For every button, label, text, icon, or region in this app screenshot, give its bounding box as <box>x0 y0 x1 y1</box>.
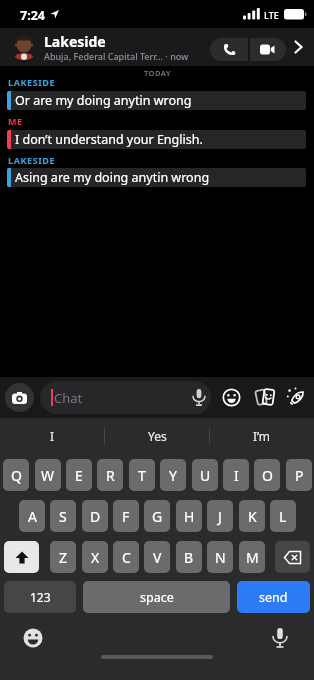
staticText: I <box>234 466 239 485</box>
button[interactable] <box>275 541 310 573</box>
staticText: N <box>215 548 226 567</box>
button[interactable]: Z <box>50 541 76 573</box>
button[interactable]: W <box>35 459 61 491</box>
staticText: V <box>153 548 162 567</box>
button[interactable]: I <box>223 459 249 491</box>
staticText: Or are my doing anytin wrong <box>15 92 192 109</box>
button[interactable] <box>5 383 34 412</box>
button[interactable]: H <box>176 500 202 532</box>
button[interactable]: P <box>286 459 312 491</box>
button[interactable] <box>210 38 248 61</box>
button[interactable]: X <box>82 541 108 573</box>
button[interactable]: U <box>192 459 218 491</box>
staticText: Z <box>59 548 68 567</box>
button[interactable]: Or are my doing anytin wrong <box>7 91 306 110</box>
button[interactable] <box>248 38 286 61</box>
button[interactable]: T <box>129 459 155 491</box>
staticText: F <box>122 507 130 526</box>
staticText: G <box>152 507 163 526</box>
button[interactable] <box>4 541 39 573</box>
button[interactable]: S <box>50 500 76 532</box>
staticText: Chat <box>54 389 83 407</box>
button[interactable]: R <box>97 459 123 491</box>
staticText: LAKESIDE <box>8 76 56 88</box>
staticText: Asing are my doing anytin wrong <box>15 169 210 186</box>
staticText: send <box>259 589 288 606</box>
staticText: H <box>184 507 195 526</box>
button[interactable]: E <box>66 459 92 491</box>
staticText: Yes <box>148 428 167 444</box>
staticText: U <box>200 466 211 485</box>
button[interactable]: F <box>113 500 139 532</box>
button[interactable]: K <box>239 500 265 532</box>
staticText: R <box>106 466 115 485</box>
staticText: O <box>262 466 273 485</box>
button[interactable]: B <box>176 541 202 573</box>
staticText: Y <box>169 466 177 485</box>
staticText: LAKESIDE <box>8 154 56 166</box>
staticText: Abuja, Federal Capital Terr… · now <box>44 50 189 62</box>
button[interactable]: 123 <box>4 581 76 613</box>
button[interactable]: D <box>82 500 108 532</box>
button[interactable] <box>283 384 310 411</box>
staticText: ME <box>8 115 23 127</box>
staticText: W <box>41 466 55 485</box>
staticText: J <box>218 507 222 526</box>
staticText: B <box>184 548 194 567</box>
button[interactable] <box>219 385 244 410</box>
button[interactable]: N <box>207 541 233 573</box>
staticText: C <box>122 548 131 567</box>
button[interactable] <box>288 35 308 59</box>
staticText: E <box>75 466 83 485</box>
button[interactable] <box>18 623 48 653</box>
button[interactable]: Yes <box>105 418 209 454</box>
staticText: A <box>28 507 37 526</box>
button[interactable] <box>265 623 295 653</box>
staticText: Lakeside <box>44 32 106 51</box>
staticText: TODAY <box>144 68 171 78</box>
button[interactable]: M <box>239 541 265 573</box>
staticText: M <box>246 548 259 567</box>
staticText: space <box>140 589 174 606</box>
button[interactable]: Y <box>160 459 186 491</box>
button[interactable]: Q <box>3 459 29 491</box>
button[interactable]: J <box>207 500 233 532</box>
button[interactable]: I’m <box>209 418 314 454</box>
button[interactable]: Chat <box>40 381 211 414</box>
button[interactable]: send <box>237 581 310 613</box>
button[interactable]: Asing are my doing anytin wrong <box>7 168 306 187</box>
button[interactable]: O <box>254 459 280 491</box>
staticText: 7:24 <box>20 7 45 24</box>
button[interactable]: I <box>0 418 105 454</box>
button[interactable]: Lakeside <box>44 32 106 51</box>
button[interactable]: C <box>113 541 139 573</box>
staticText: I <box>50 428 55 444</box>
staticText: X <box>91 548 100 567</box>
staticText: S <box>59 507 67 526</box>
staticText: T <box>138 466 146 485</box>
staticText: K <box>248 507 257 526</box>
staticText: Q <box>11 466 22 485</box>
button[interactable] <box>252 384 279 411</box>
staticText: I’m <box>253 428 271 444</box>
button[interactable]: I don’t understand your English. <box>7 130 306 149</box>
button[interactable]: L <box>270 500 296 532</box>
staticText: I don’t understand your English. <box>15 131 203 148</box>
staticText: P <box>295 466 304 485</box>
staticText: D <box>90 507 101 526</box>
button[interactable]: G <box>144 500 170 532</box>
staticText: LTE <box>264 9 279 21</box>
staticText: L <box>279 507 287 526</box>
button[interactable]: A <box>19 500 45 532</box>
staticText: 123 <box>30 589 51 605</box>
button[interactable]: V <box>144 541 170 573</box>
button[interactable]: space <box>83 581 230 613</box>
